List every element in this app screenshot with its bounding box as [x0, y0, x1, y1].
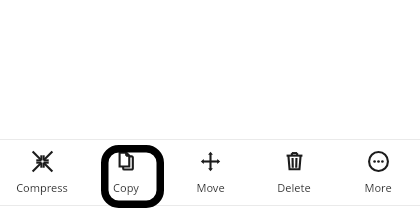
button[interactable]: More — [336, 140, 420, 205]
staticText: Delete — [277, 180, 311, 195]
staticText: More — [364, 180, 392, 195]
button[interactable]: Move — [168, 140, 252, 205]
staticText: Move — [196, 180, 225, 195]
staticText: Compress — [16, 180, 68, 195]
button[interactable]: Compress — [0, 140, 84, 205]
button[interactable]: Delete — [252, 140, 336, 205]
button[interactable]: Copy — [84, 140, 168, 205]
staticText: Copy — [113, 180, 139, 195]
